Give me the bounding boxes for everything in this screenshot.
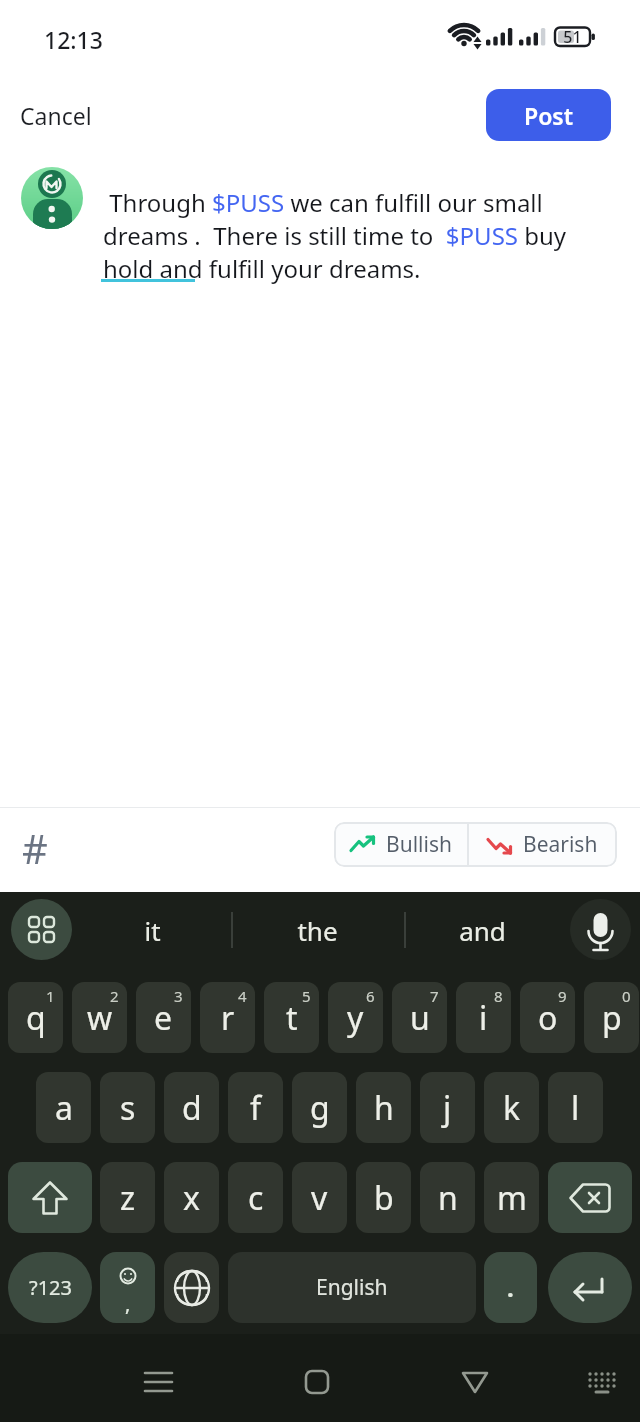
staticText: s (120, 1086, 136, 1130)
button[interactable]: . (484, 1252, 537, 1323)
staticText: 6 (366, 986, 375, 1006)
button[interactable]: and (0, 892, 110, 948)
staticText: ?123 (29, 1274, 72, 1301)
button[interactable] (548, 1162, 632, 1233)
staticText: English (316, 1273, 388, 1302)
staticText: m (497, 1176, 527, 1220)
staticText: u (410, 996, 430, 1040)
button[interactable]: # (13, 818, 57, 878)
staticText: a (55, 1086, 73, 1130)
staticText: 3 (174, 986, 183, 1006)
staticText: Through $PUSS we can fulfill our small (103, 186, 543, 219)
button[interactable]: k (484, 1072, 539, 1143)
button[interactable]: i (456, 982, 511, 1053)
button[interactable]: Cancel (20, 95, 112, 135)
staticText: h (374, 1086, 394, 1130)
staticText: and (459, 913, 506, 948)
button[interactable]: u (392, 982, 447, 1053)
button[interactable] (573, 1354, 629, 1402)
staticText: y (347, 996, 364, 1040)
staticText: p (602, 996, 622, 1040)
button[interactable]: m (484, 1162, 539, 1233)
button[interactable] (164, 1252, 219, 1323)
button[interactable]: j (420, 1072, 475, 1143)
button[interactable]: g (292, 1072, 347, 1143)
staticText: 4 (238, 986, 247, 1006)
staticText: Bearish (523, 830, 598, 859)
button[interactable]: o (520, 982, 575, 1053)
button[interactable]: z (100, 1162, 155, 1233)
staticText: Post (524, 100, 574, 131)
staticText: 2 (110, 986, 119, 1006)
staticText: hold and fulfill your dreams. (103, 252, 421, 285)
button[interactable]: b (356, 1162, 411, 1233)
button[interactable]: h (356, 1072, 411, 1143)
button[interactable]: the (0, 892, 140, 948)
button[interactable]: Post (486, 89, 611, 141)
staticText: z (120, 1176, 136, 1220)
staticText: dreams . There is still time to $PUSS bu… (103, 219, 567, 252)
button[interactable]: f (228, 1072, 283, 1143)
button[interactable]: English (228, 1252, 476, 1323)
staticText: Cancel (20, 100, 92, 131)
button[interactable]: e (136, 982, 191, 1053)
staticText: v (311, 1176, 328, 1220)
staticText: o (538, 996, 558, 1040)
button[interactable]: it (0, 892, 140, 948)
button[interactable]: v (292, 1162, 347, 1233)
staticText: 8 (494, 986, 503, 1006)
staticText: Bullish (386, 830, 452, 859)
staticText: 9 (558, 986, 567, 1006)
button[interactable]: Bullish (334, 822, 467, 867)
staticText: n (438, 1176, 458, 1220)
button[interactable]: d (164, 1072, 219, 1143)
staticText: t (286, 996, 298, 1040)
button[interactable]: a (36, 1072, 91, 1143)
button[interactable]: l (548, 1072, 603, 1143)
button[interactable]: q (8, 982, 63, 1053)
button[interactable]: p (584, 982, 639, 1053)
button[interactable]: r (200, 982, 255, 1053)
button[interactable]: Bearish (468, 822, 617, 867)
staticText: w (87, 996, 113, 1040)
staticText: 51 (563, 26, 582, 48)
staticText: c (248, 1176, 264, 1220)
staticText: r (221, 996, 235, 1040)
staticText: , (125, 1290, 131, 1317)
staticText: the (297, 913, 338, 948)
button[interactable]: t (264, 982, 319, 1053)
button[interactable] (11, 899, 72, 960)
staticText: q (26, 996, 46, 1040)
button[interactable]: c (228, 1162, 283, 1233)
staticText: d (182, 1086, 202, 1130)
staticText: x (183, 1176, 200, 1220)
staticText: # (22, 821, 48, 875)
staticText: . (507, 1271, 514, 1304)
button[interactable]: y (328, 982, 383, 1053)
button[interactable] (130, 1354, 186, 1402)
staticText: f (250, 1086, 262, 1130)
staticText: i (479, 996, 488, 1040)
button[interactable]: ?123 (8, 1252, 92, 1323)
button[interactable]: , (100, 1252, 155, 1323)
staticText: k (503, 1086, 521, 1130)
button[interactable]: n (420, 1162, 475, 1233)
button[interactable] (548, 1252, 632, 1323)
staticText: 7 (430, 986, 439, 1006)
button[interactable]: w (72, 982, 127, 1053)
button[interactable] (289, 1354, 345, 1402)
staticText: it (144, 913, 161, 948)
staticText: l (571, 1086, 580, 1130)
button[interactable]: s (100, 1072, 155, 1143)
staticText: 1 (46, 986, 55, 1006)
staticText: 12:13 (44, 24, 103, 55)
staticText: b (374, 1176, 394, 1220)
button[interactable] (8, 1162, 92, 1233)
staticText: g (310, 1086, 330, 1130)
staticText: j (443, 1086, 452, 1130)
button[interactable] (447, 1354, 503, 1402)
button[interactable]: x (164, 1162, 219, 1233)
staticText: 5 (302, 986, 311, 1006)
button[interactable] (570, 899, 631, 960)
staticText: e (154, 996, 173, 1040)
